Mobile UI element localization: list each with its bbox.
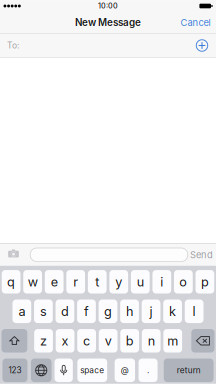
button[interactable]: Next keyboard (31, 359, 52, 382)
button[interactable]: h (120, 300, 139, 323)
button[interactable]: j (142, 300, 160, 323)
staticText: k (169, 304, 176, 319)
button[interactable]: Shift (1, 329, 27, 353)
staticText: w (28, 274, 38, 289)
button[interactable]: return (164, 359, 214, 382)
button[interactable]: Dictate (55, 359, 73, 382)
button[interactable]: Add contact (193, 36, 211, 54)
staticText: q (7, 274, 15, 289)
button[interactable]: d (56, 300, 74, 323)
button[interactable]: f (77, 300, 96, 323)
button[interactable]: Send (188, 244, 215, 266)
button[interactable]: n (142, 329, 161, 353)
button[interactable]: p (195, 270, 214, 294)
button[interactable]: t (88, 270, 107, 294)
staticText: f (84, 304, 89, 319)
staticText: u (137, 274, 144, 289)
button[interactable]: space (77, 359, 107, 382)
button[interactable]: q (2, 270, 20, 294)
staticText: o (179, 274, 187, 289)
staticText: e (51, 274, 58, 289)
button[interactable]: k (163, 300, 182, 323)
button[interactable]: Delete (191, 329, 214, 353)
button[interactable]: Cancel (180, 17, 216, 28)
staticText: space (80, 365, 104, 375)
staticText: m (167, 333, 178, 348)
button[interactable]: Camera (1, 244, 29, 266)
staticText: 10:00 (98, 2, 118, 10)
staticText: z (40, 333, 47, 348)
button[interactable]: s (34, 300, 53, 323)
button[interactable]: b (120, 329, 139, 353)
button[interactable]: x (56, 329, 74, 353)
button[interactable]: z (34, 329, 53, 353)
staticText: p (201, 274, 209, 289)
button[interactable]: w (23, 270, 42, 294)
staticText: 123 (8, 365, 21, 375)
staticText: i (160, 274, 163, 289)
staticText: x (62, 333, 69, 348)
button[interactable]: v (99, 329, 118, 353)
staticText: @ (121, 365, 129, 375)
staticText: g (104, 304, 112, 319)
button[interactable]: e (45, 270, 64, 294)
staticText: b (126, 333, 134, 348)
staticText: t (95, 274, 99, 289)
button[interactable]: g (99, 300, 117, 323)
button[interactable]: u (131, 270, 150, 294)
button[interactable]: m (163, 329, 182, 353)
button[interactable]: r (66, 270, 85, 294)
staticText: y (115, 274, 122, 289)
button[interactable]: a (12, 300, 31, 323)
staticText: d (61, 304, 69, 319)
staticText: . (147, 365, 149, 375)
staticText: r (73, 274, 78, 289)
staticText: s (40, 304, 47, 319)
button[interactable]: y (109, 270, 128, 294)
staticText: l (193, 304, 196, 319)
staticText: Cancel (180, 17, 210, 28)
button[interactable]: . (139, 359, 158, 382)
staticText: c (83, 333, 90, 348)
button[interactable]: @ (115, 359, 135, 382)
staticText: n (148, 333, 155, 348)
staticText: return (177, 365, 201, 375)
button[interactable]: l (185, 300, 203, 323)
staticText: h (126, 304, 133, 319)
button[interactable]: i (152, 270, 171, 294)
staticText: To: (7, 40, 19, 51)
staticText: a (18, 304, 25, 319)
staticText: New Message (75, 16, 141, 28)
staticText: v (105, 333, 112, 348)
staticText: j (150, 304, 153, 319)
button[interactable]: 123 (2, 359, 27, 382)
button[interactable]: c (77, 329, 96, 353)
button[interactable]: o (174, 270, 193, 294)
staticText: Send (190, 249, 213, 260)
